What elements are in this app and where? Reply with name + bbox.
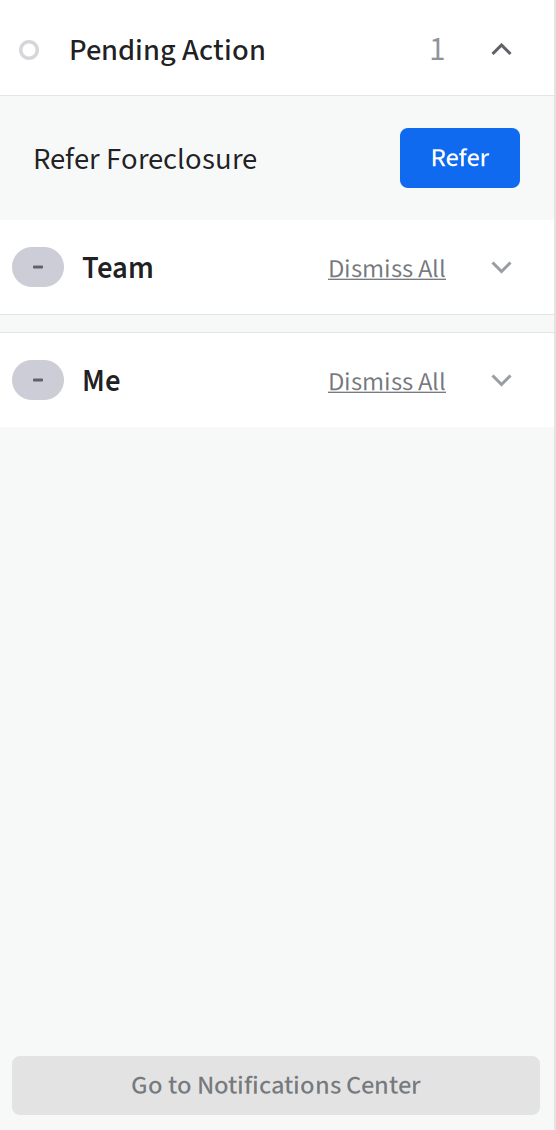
staticText: Go to Notifications Center xyxy=(131,1066,421,1104)
staticText: Dismiss All xyxy=(328,363,446,401)
staticText: Refer xyxy=(430,139,489,177)
staticText: Team xyxy=(82,247,154,290)
staticText: Refer Foreclosure xyxy=(33,138,257,181)
button[interactable]: Refer xyxy=(400,128,520,188)
button[interactable]: Expand Team xyxy=(457,247,546,287)
button[interactable]: Pending Action xyxy=(0,0,554,95)
button[interactable]: Me xyxy=(0,333,554,427)
button[interactable]: Team xyxy=(0,220,554,314)
button[interactable]: Dismiss All xyxy=(314,246,457,288)
button[interactable]: Expand Me xyxy=(457,360,546,400)
staticText: 1 xyxy=(429,26,446,73)
staticText: Me xyxy=(82,360,121,403)
button[interactable]: Dismiss All xyxy=(314,359,457,401)
staticText: Pending Action xyxy=(69,29,266,72)
button[interactable]: Go to Notifications Center xyxy=(12,1056,540,1115)
staticText: Dismiss All xyxy=(328,250,446,288)
